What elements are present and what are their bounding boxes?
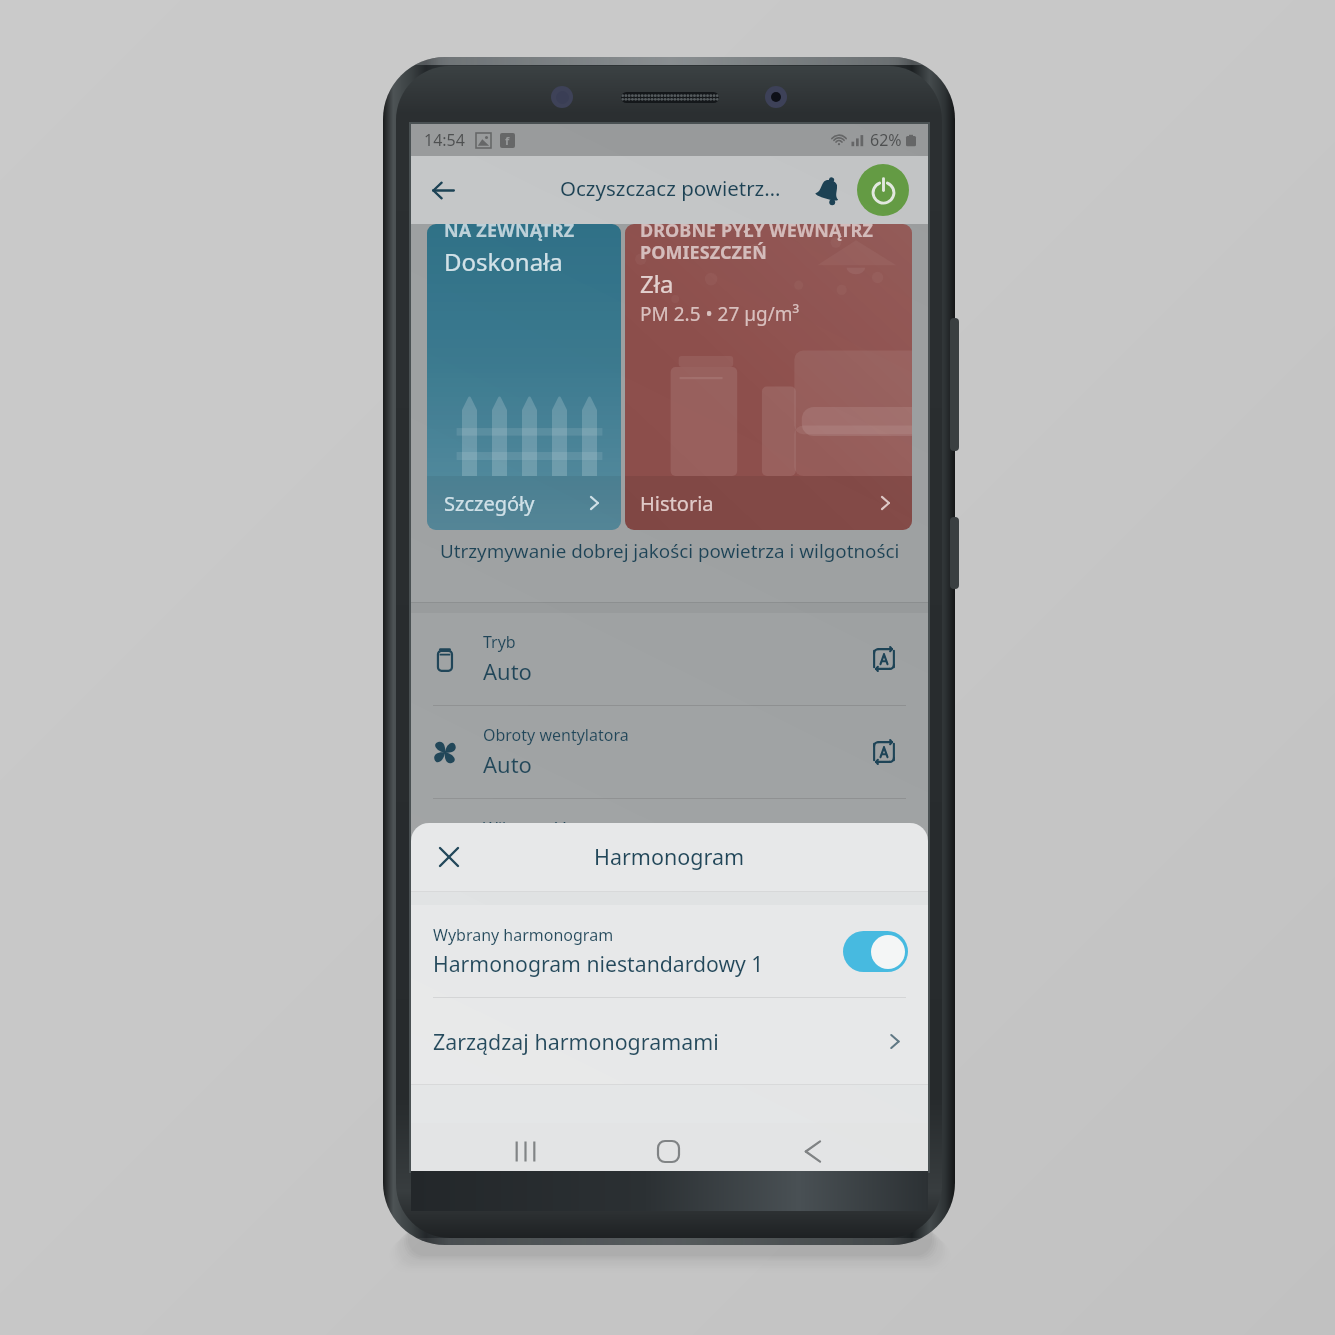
staticText: Doskonała [444, 245, 563, 278]
staticText: Utrzymywanie dobrej jakości powietrza i … [440, 538, 900, 564]
button[interactable]: Obroty wentylatora [411, 706, 928, 798]
button[interactable]: Back [419, 166, 467, 214]
button[interactable]: Recents [501, 1127, 549, 1175]
staticText: f [505, 133, 510, 148]
staticText: DROBNE PYŁY WEWNĄTRZ POMIESZCZEŃ [640, 224, 873, 265]
button[interactable]: Notifications [806, 168, 850, 212]
staticText: Tryb [483, 631, 516, 653]
button[interactable]: Zarządzaj harmonogramami [411, 998, 928, 1084]
staticText: Wybrany harmonogram [433, 924, 614, 946]
button[interactable]: Wilgotność [411, 799, 928, 891]
staticText: Zarządzaj harmonogramami [433, 1027, 719, 1056]
staticText: Oczyszczacz powietrz… [560, 174, 781, 202]
button[interactable]: Power [857, 164, 909, 216]
button[interactable]: Home [644, 1127, 692, 1175]
button[interactable]: DROBNE PYŁY WEWNĄTRZ POMIESZCZEŃ [625, 224, 912, 530]
button[interactable]: Tryb [411, 613, 928, 705]
button[interactable]: Wybrany harmonogram [411, 905, 928, 997]
staticText: 62% [870, 129, 902, 151]
button[interactable]: Back [788, 1127, 836, 1175]
staticText: NA ZEWNĄTRZ [444, 224, 575, 243]
button[interactable]: Close [425, 833, 473, 881]
staticText: Obroty wentylatora [483, 724, 629, 746]
staticText: Szczegóły [444, 490, 535, 517]
staticText: 14:54 [424, 129, 465, 151]
staticText: PM 2.5 • 27 µg/m³ [640, 301, 800, 327]
staticText: Historia [640, 490, 714, 517]
staticText: Auto [483, 749, 532, 779]
staticText: Wilgotność [483, 817, 567, 839]
button[interactable]: NA ZEWNĄTRZ [427, 224, 621, 530]
staticText: Harmonogram niestandardowy 1 [433, 949, 764, 978]
staticText: Auto [483, 656, 532, 686]
staticText: Zła [640, 267, 674, 300]
staticText: Harmonogram [594, 842, 745, 871]
